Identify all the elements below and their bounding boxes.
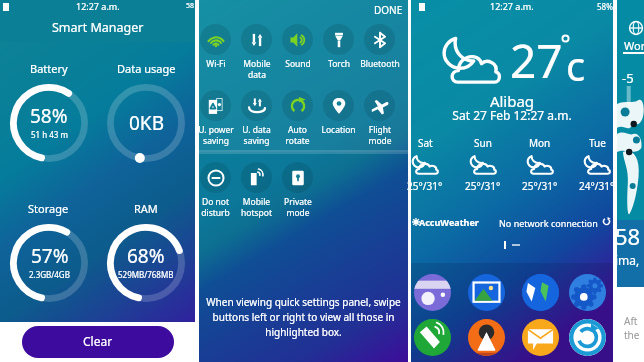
staticText: Bluetooth [360, 58, 400, 70]
staticText: Worl [624, 38, 644, 53]
staticText: Battery [30, 61, 68, 76]
staticText: Sound [285, 58, 311, 70]
staticText: Mon [529, 136, 551, 150]
button[interactable]: Phone [414, 319, 451, 356]
staticText: 2.3GB/4GB [29, 269, 70, 280]
staticText: U. power saving [198, 124, 234, 146]
staticText: U. data saving [242, 124, 271, 146]
staticText: 51 h 43 m [31, 129, 68, 140]
button[interactable]: Messages [522, 319, 559, 356]
staticText: 68% [127, 243, 165, 269]
button[interactable]: Storage [0, 182, 97, 322]
button[interactable]: Sound [277, 24, 318, 70]
staticText: 25°/31° [465, 179, 501, 193]
button[interactable]: Mobile hotspot [236, 162, 277, 218]
button[interactable]: Ultra data saving [236, 90, 277, 146]
staticText: Wi-Fi [206, 58, 226, 70]
button[interactable]: Contacts [468, 319, 505, 356]
staticText: 12:27 a.m. [76, 0, 120, 12]
staticText: Clear [83, 333, 113, 349]
staticText: Do not disturb [201, 196, 230, 218]
staticText: 24°/31° [579, 179, 615, 193]
staticText: Mobile hotspot [241, 196, 272, 218]
button[interactable]: Ultra power saving [195, 90, 236, 146]
staticText: 27 [510, 29, 563, 92]
button[interactable]: DONE [374, 3, 403, 17]
staticText: Storage [28, 201, 69, 216]
button[interactable]: Flight mode [359, 90, 400, 146]
button[interactable]: RAM [97, 182, 195, 322]
staticText: the [624, 328, 640, 342]
staticText: c [566, 38, 586, 92]
button[interactable]: Data usage [97, 42, 195, 182]
staticText: Tue [589, 136, 606, 150]
staticText: Auto rotate [285, 124, 310, 146]
staticText: Smart Manager [52, 19, 144, 36]
staticText: 58% [597, 1, 613, 12]
button[interactable]: Torch [318, 24, 359, 70]
staticText: 58 [186, 1, 195, 11]
staticText: 58 [617, 221, 641, 251]
staticText: -5 [622, 69, 634, 87]
button[interactable]: Refresh [602, 217, 611, 226]
staticText: Location [321, 124, 356, 136]
staticText: 57% [31, 243, 69, 269]
staticText: No network connection [499, 217, 598, 229]
staticText: AccuWeather [419, 216, 479, 228]
staticText: Torch [328, 58, 350, 70]
staticText: 58% [30, 103, 68, 129]
staticText: Aft [624, 314, 638, 328]
staticText: Sun [474, 136, 492, 150]
button[interactable]: Gallery [468, 274, 505, 311]
staticText: 25°/31° [407, 179, 443, 193]
button[interactable]: Do not disturb [195, 162, 236, 218]
staticText: 0KB [129, 110, 164, 136]
staticText: ima, [617, 252, 640, 268]
staticText: Private mode [284, 196, 312, 218]
staticText: 12:27 a.m. [490, 0, 534, 12]
button[interactable]: Camera [414, 274, 451, 311]
button[interactable]: Smart Manager [569, 319, 606, 356]
staticText: Flight mode [368, 124, 392, 146]
button[interactable]: Clear [22, 326, 174, 358]
staticText: Sat [418, 136, 433, 150]
button[interactable]: Location [318, 90, 359, 136]
button[interactable]: Mobile data [236, 24, 277, 80]
staticText: Alibag [411, 91, 613, 111]
button[interactable]: Auto rotate [277, 90, 318, 146]
staticText: 25°/31° [522, 179, 558, 193]
staticText: Mobile data [243, 58, 271, 80]
button[interactable]: Battery [0, 42, 97, 182]
staticText: RAM [134, 201, 158, 216]
staticText: Sat 27 Feb 12:27 a.m. [411, 107, 613, 123]
button[interactable]: Wi-Fi [195, 24, 236, 70]
staticText: Data usage [117, 61, 176, 76]
button[interactable]: Settings [569, 274, 606, 311]
button[interactable]: Internet [522, 274, 559, 311]
button[interactable]: Bluetooth [359, 24, 400, 70]
staticText: 529MB/768MB [118, 269, 174, 280]
staticText: When viewing quick settings panel, swipe… [199, 295, 408, 339]
button[interactable]: Private mode [277, 162, 318, 218]
